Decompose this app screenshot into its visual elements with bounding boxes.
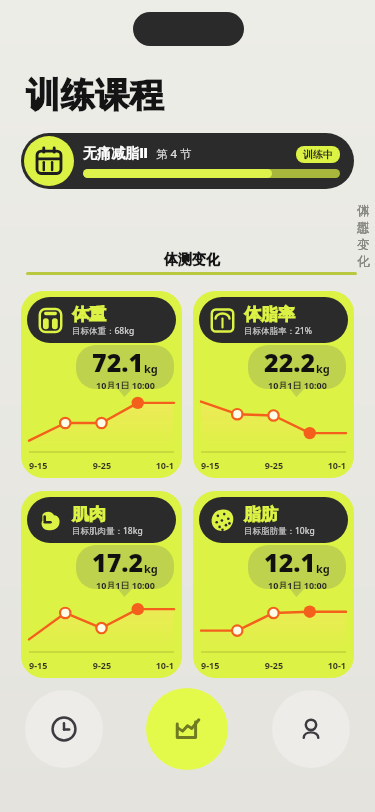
button[interactable]: Profile: [272, 690, 350, 768]
staticText: 9-25: [78, 659, 126, 671]
staticText: 72.1: [92, 345, 144, 379]
staticText: kg: [144, 361, 158, 376]
staticText: 体重: [72, 304, 106, 325]
staticText: 10月1日 10:00: [268, 379, 327, 389]
staticText: 体脂率: [244, 304, 295, 325]
staticText: 10月1日 10:00: [96, 579, 155, 589]
staticText: 10-1: [298, 459, 346, 471]
button[interactable]: Stats: [146, 688, 228, 770]
staticText: 肌肉: [72, 504, 106, 525]
button[interactable]: 体脂率: [193, 291, 354, 478]
staticText: 17.2: [92, 545, 144, 579]
staticText: 12.1: [264, 545, 316, 579]
staticText: 10-1: [126, 459, 174, 471]
staticText: kg: [316, 561, 330, 576]
staticText: 9-15: [201, 659, 250, 671]
button[interactable]: 无痛减脂Ⅱ: [21, 133, 354, 189]
staticText: 无痛减脂Ⅱ: [83, 145, 149, 163]
staticText: 9-25: [250, 659, 298, 671]
staticText: 9-25: [250, 459, 298, 471]
staticText: 目标体脂率：21%: [244, 325, 312, 337]
staticText: 目标脂肪量：10kg: [244, 525, 315, 537]
staticText: 训练中: [303, 148, 333, 161]
staticText: 训练课程: [26, 74, 164, 117]
staticText: 10-1: [298, 659, 346, 671]
button[interactable]: 脂肪: [193, 491, 354, 678]
staticText: 目标体重：68kg: [72, 325, 135, 337]
staticText: 9-15: [201, 459, 250, 471]
staticText: 22.2: [264, 345, 316, 379]
staticText: 9-25: [78, 459, 126, 471]
staticText: kg: [144, 561, 158, 576]
button[interactable]: 体测变化: [26, 251, 357, 275]
staticText: 10月1日 10:00: [268, 579, 327, 589]
staticText: 10月1日 10:00: [96, 379, 155, 389]
staticText: 目标肌肉量：18kg: [72, 525, 143, 537]
staticText: 9-15: [29, 459, 78, 471]
staticText: 体测变化: [164, 251, 220, 269]
button[interactable]: 肌肉: [21, 491, 182, 678]
button[interactable]: History: [25, 690, 103, 768]
button[interactable]: 体重: [21, 291, 182, 478]
staticText: 9-15: [29, 659, 78, 671]
staticText: 第 4 节: [156, 146, 192, 162]
staticText: 10-1: [126, 659, 174, 671]
staticText: kg: [316, 361, 330, 376]
staticText: 脂肪: [244, 504, 278, 525]
